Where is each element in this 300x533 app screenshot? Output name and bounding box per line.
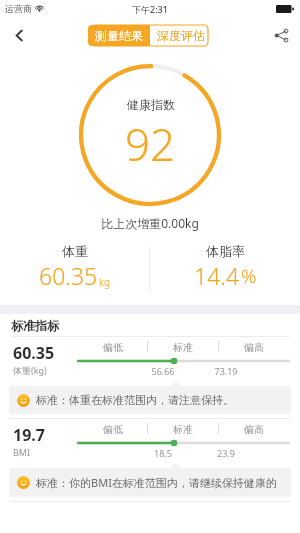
staticText: 运营商 bbox=[5, 3, 32, 14]
staticText: 偏高 bbox=[244, 341, 264, 354]
staticText: 56.66 bbox=[133, 365, 193, 377]
staticText: 标准：你的BMI在标准范围内，请继续保持健康的 bbox=[36, 475, 277, 490]
staticText: % bbox=[241, 263, 257, 289]
button[interactable]: 60.35 bbox=[0, 337, 300, 381]
staticText: 14.4 bbox=[194, 260, 240, 291]
staticText: 60.35 bbox=[13, 342, 55, 364]
button[interactable]: 测量结果 bbox=[88, 25, 150, 46]
staticText: BMI bbox=[13, 446, 31, 458]
staticText: 体重 bbox=[62, 243, 88, 259]
staticText: 下午2:31 bbox=[132, 3, 168, 15]
staticText: 健康指数 bbox=[127, 97, 175, 112]
button[interactable]: 标准：你的BMI在标准范围内，请继续保持健康的 bbox=[9, 468, 291, 497]
staticText: 18.5 bbox=[133, 447, 193, 459]
staticText: 23.9 bbox=[193, 447, 259, 459]
button[interactable]: Share bbox=[262, 17, 300, 53]
staticText: kg bbox=[99, 275, 110, 289]
staticText: 体重(kg) bbox=[13, 364, 47, 376]
button[interactable]: 19.7 bbox=[0, 419, 300, 463]
staticText: 标准：体重在标准范围内，请注意保持。 bbox=[36, 393, 234, 407]
staticText: 60.35 bbox=[39, 260, 98, 291]
staticText: 体脂率 bbox=[206, 243, 245, 259]
staticText: 标准指标 bbox=[11, 318, 59, 333]
button[interactable]: 标准：体重在标准范围内，请注意保持。 bbox=[9, 386, 291, 414]
button[interactable]: 体重 bbox=[0, 243, 149, 291]
staticText: 偏高 bbox=[244, 423, 264, 436]
staticText: 92 bbox=[125, 114, 176, 174]
staticText: 测量结果 bbox=[95, 28, 143, 43]
staticText: 19.7 bbox=[13, 424, 45, 446]
staticText: 深度评估 bbox=[157, 28, 205, 43]
staticText: 比上次增重0.00kg bbox=[0, 215, 300, 231]
button[interactable]: Back bbox=[0, 17, 38, 53]
staticText: 标准 bbox=[173, 423, 193, 436]
staticText: 标准 bbox=[173, 341, 193, 354]
staticText: 73.19 bbox=[193, 365, 259, 377]
staticText: 偏低 bbox=[103, 341, 123, 354]
staticText: 偏低 bbox=[103, 423, 123, 436]
button[interactable]: 体脂率 bbox=[150, 243, 300, 291]
button[interactable]: 深度评估 bbox=[150, 25, 212, 46]
